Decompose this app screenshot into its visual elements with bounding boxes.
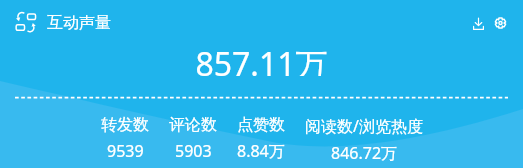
- staticText: 857.11万: [195, 42, 328, 76]
- staticText: 点赞数: [237, 115, 285, 135]
- staticText: 评论数: [169, 115, 217, 135]
- staticText: 互动声量: [47, 13, 111, 33]
- staticText: 846.72万: [331, 142, 398, 164]
- staticText: 5903: [175, 140, 212, 162]
- button[interactable]: 转发数: [101, 115, 149, 162]
- staticText: 阅读数/浏览热度: [305, 115, 423, 137]
- staticText: 9539: [107, 140, 144, 162]
- button[interactable]: 阅读数/浏览热度: [305, 115, 423, 164]
- staticText: 8.84万: [237, 140, 285, 162]
- button[interactable]: 点赞数: [237, 115, 285, 162]
- button[interactable]: Download: [467, 1, 489, 44]
- staticText: 转发数: [101, 115, 149, 135]
- button[interactable]: 评论数: [169, 115, 217, 162]
- button[interactable]: Settings: [489, 1, 511, 44]
